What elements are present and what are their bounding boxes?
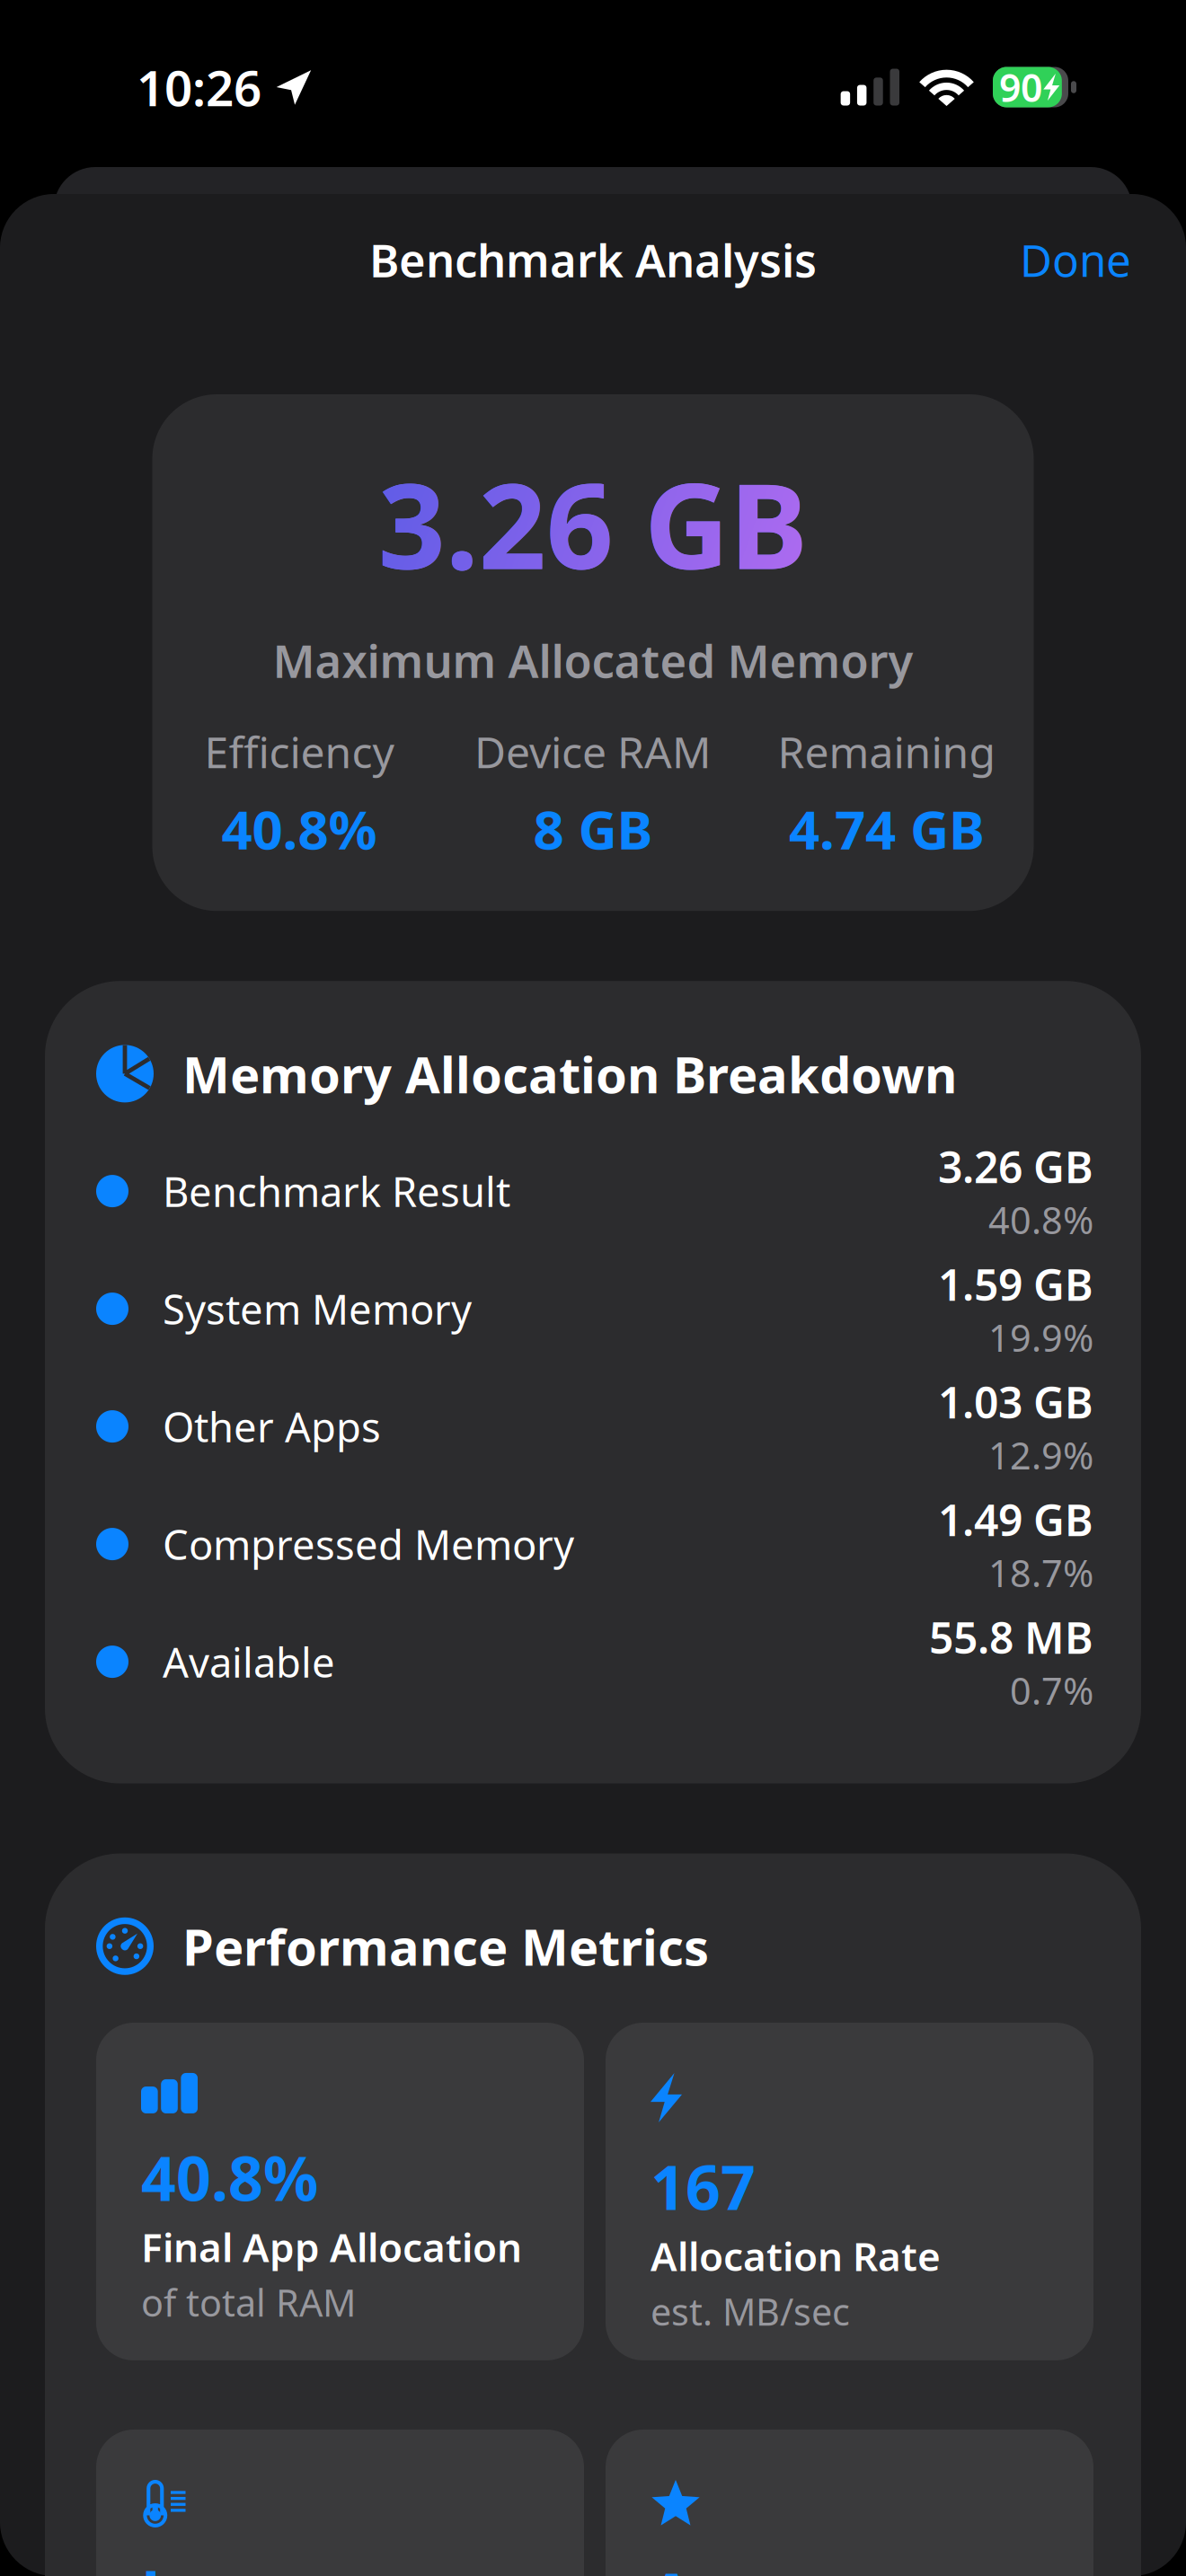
staticText: Efficiency — [204, 723, 394, 780]
staticText: Performance Metrics — [182, 1913, 709, 1980]
button[interactable]: Done — [1000, 214, 1151, 305]
staticText: Low — [141, 2551, 264, 2576]
staticText: 1.03 GB — [938, 1373, 1093, 1430]
staticText: Done — [1020, 230, 1131, 289]
staticText: of total RAM — [141, 2278, 356, 2327]
staticText: 4.74 GB — [789, 793, 985, 864]
staticText: 55.8 MB — [929, 1608, 1093, 1666]
staticText: 3.26 GB — [378, 446, 808, 601]
staticText: Allocation Rate — [651, 2230, 941, 2282]
staticText: Benchmark Analysis — [369, 229, 817, 290]
staticText: Final App Allocation — [141, 2221, 522, 2273]
staticText: Benchmark Result — [163, 1164, 510, 1218]
staticText: System Memory — [163, 1282, 472, 1336]
staticText: 3.26 GB — [938, 1138, 1093, 1195]
staticText: 40.8% — [221, 793, 377, 864]
staticText: 40.8% — [988, 1195, 1093, 1244]
staticText: Maximum Allocated Memory — [273, 630, 913, 691]
staticText: Remaining — [778, 723, 996, 780]
staticText: 12.9% — [988, 1430, 1093, 1480]
staticText: Compressed Memory — [163, 1517, 574, 1571]
staticText: 1.59 GB — [938, 1255, 1093, 1313]
staticText: 10:26 — [137, 55, 261, 120]
staticText: 18.7% — [988, 1548, 1093, 1597]
staticText: 19.9% — [988, 1313, 1093, 1362]
staticText: Memory Allocation Breakdown — [182, 1040, 957, 1107]
staticText: Device RAM — [474, 723, 712, 780]
staticText: A+ — [651, 2554, 728, 2576]
staticText: Available — [163, 1635, 335, 1689]
staticText: 0.7% — [1010, 1666, 1093, 1715]
staticText: 8 GB — [533, 793, 653, 864]
staticText: est. MB/sec — [651, 2287, 850, 2336]
staticText: 40.8% — [141, 2137, 318, 2218]
staticText: 1.49 GB — [938, 1491, 1093, 1548]
staticText: 167 — [651, 2146, 756, 2227]
staticText: 90 — [999, 62, 1042, 113]
staticText: Other Apps — [163, 1399, 381, 1453]
